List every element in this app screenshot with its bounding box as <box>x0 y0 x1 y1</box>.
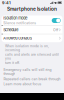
staticText: Allowed contacts <box>3 36 32 41</box>
staticText: Smartphone Isolation <box>7 6 57 12</box>
button[interactable]: Schedule <box>1 26 62 34</box>
staticText: Learn more about focus <box>3 82 41 86</box>
staticText: turn it off. <box>5 61 20 65</box>
staticText: Repeated callers can break through <box>3 77 60 81</box>
button[interactable]: Isolation mode <box>1 15 62 25</box>
staticText: Schedule <box>3 27 18 32</box>
staticText: Isolation mode <box>3 16 27 20</box>
staticText: Off <box>53 28 58 32</box>
button[interactable]: Allowed contacts <box>1 34 62 42</box>
staticText: When isolation mode is on, incoming <box>5 44 49 52</box>
staticText: Emergency calls will still ring through <box>3 68 51 76</box>
staticText: calls and alerts are silenced until you <box>5 52 59 60</box>
staticText: Silence notifications <box>3 21 36 25</box>
staticText: 9:41 <box>2 0 11 5</box>
